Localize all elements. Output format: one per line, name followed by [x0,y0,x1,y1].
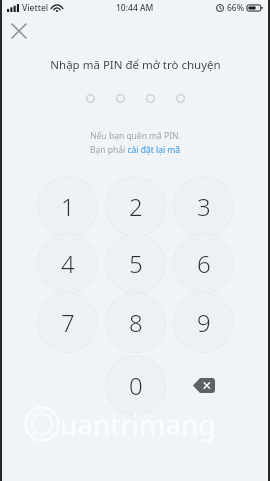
button[interactable]: 7 [37,292,98,353]
staticText: 10:44 AM [116,2,154,14]
staticText: Viettel [22,2,49,14]
button[interactable]: Close [4,16,34,46]
staticText: 0 [129,369,143,402]
staticText: 5 [129,247,143,280]
staticText: 7 [61,306,75,339]
staticText: 6 [197,247,211,280]
button[interactable]: 8 [105,292,166,353]
button[interactable]: 2 [105,176,166,237]
button[interactable]: 6 [173,233,234,294]
button[interactable]: 9 [173,292,234,353]
staticText: Nhập mã PIN để mở trò chuyện [50,57,221,73]
staticText: 66% [227,2,244,14]
staticText: uantrimang [60,405,216,443]
button[interactable]: Bạn phải cài đặt lại mã [90,144,181,156]
staticText: Nếu bạn quên mã PIN. [90,130,181,142]
staticText: 4 [61,247,75,280]
button[interactable]: 1 [37,176,98,237]
button[interactable]: 4 [37,233,98,294]
button[interactable]: 0 [105,355,166,416]
button[interactable]: Backspace [173,355,234,416]
staticText: 1 [61,190,75,223]
button[interactable]: 5 [105,233,166,294]
staticText: 2 [129,190,143,223]
staticText: 8 [129,306,143,339]
staticText: 3 [197,190,211,223]
staticText: 9 [197,306,211,339]
button[interactable]: 3 [173,176,234,237]
staticText: Bạn phải cài đặt lại mã [90,144,181,156]
